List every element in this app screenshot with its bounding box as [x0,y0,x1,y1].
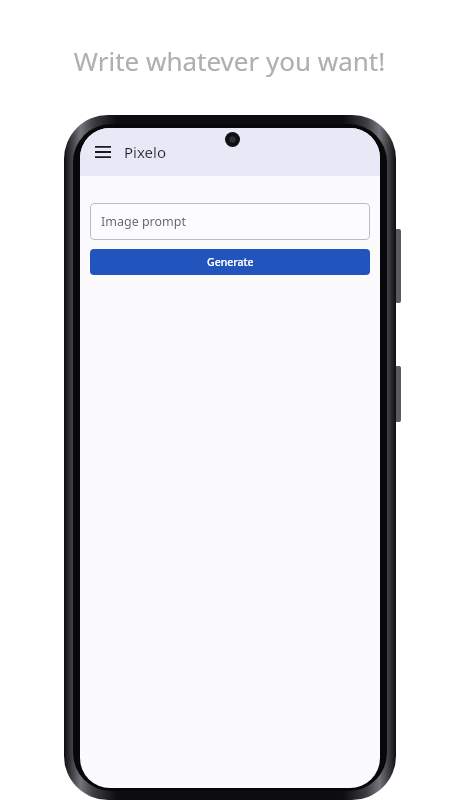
button[interactable]: Generate [90,249,370,275]
button[interactable]: Open navigation menu [89,138,117,166]
staticText: Write whatever you want! [0,43,459,78]
staticText: Pixelo [124,142,166,162]
button[interactable]: Image prompt [90,203,370,240]
staticText: Image prompt [101,213,186,230]
staticText: Generate [207,255,254,269]
